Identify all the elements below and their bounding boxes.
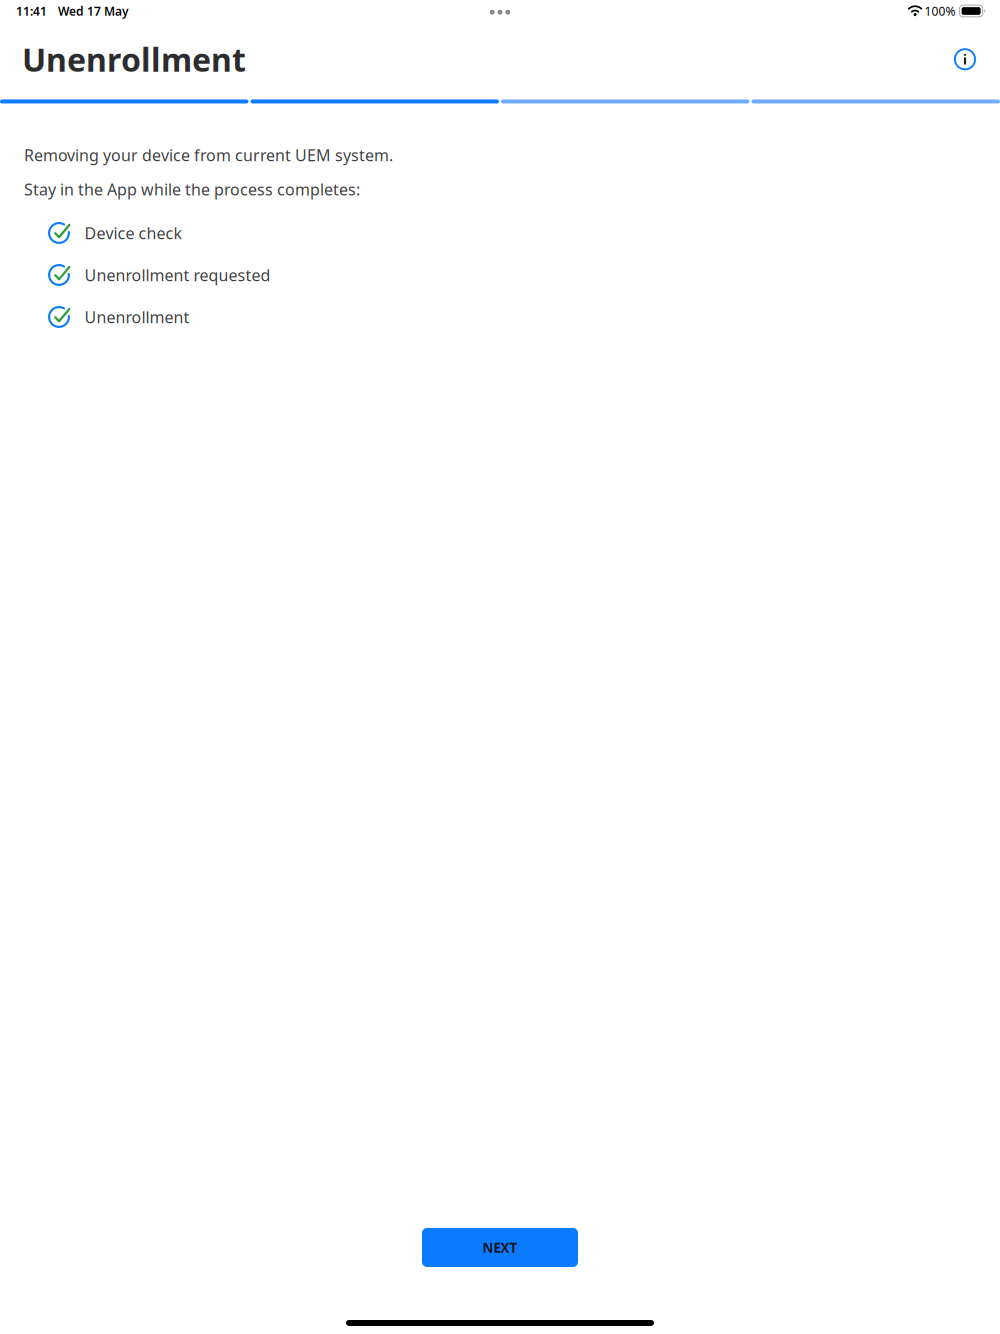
staticText: Unenrollment requested	[84, 264, 270, 286]
staticText: Stay in the App while the process comple…	[24, 179, 360, 200]
staticText: Device check	[84, 222, 182, 244]
staticText: Wed 17 May	[58, 3, 129, 19]
button[interactable]: NEXT	[422, 1228, 578, 1267]
staticText: Removing your device from current UEM sy…	[24, 144, 393, 166]
staticText: 11:41	[16, 3, 47, 19]
staticText: NEXT	[482, 1239, 517, 1256]
button[interactable]: Information	[948, 42, 982, 76]
staticText: Unenrollment	[22, 38, 246, 80]
staticText: 100%	[925, 3, 956, 19]
staticText: Unenrollment	[84, 306, 189, 328]
